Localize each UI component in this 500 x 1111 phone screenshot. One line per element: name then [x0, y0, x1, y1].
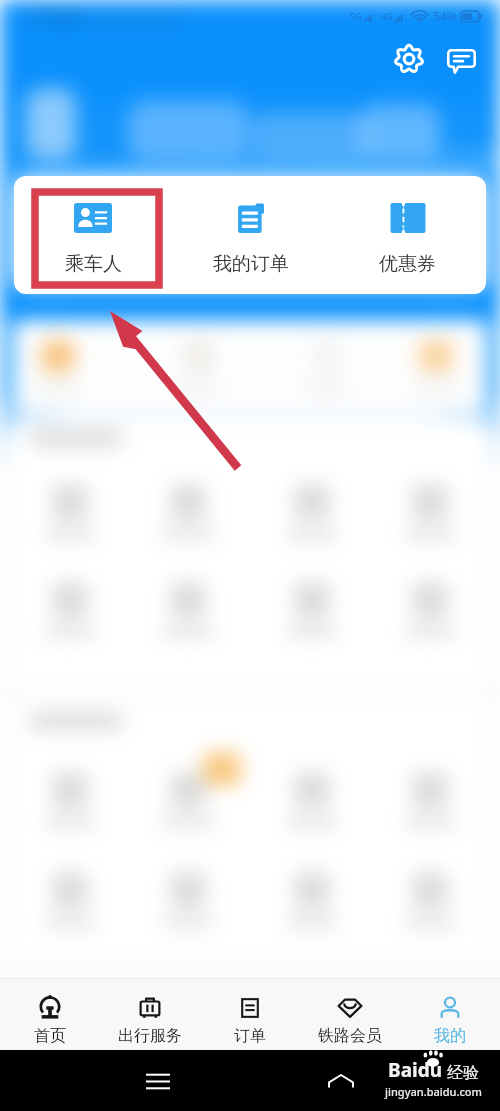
button[interactable]: 首页 [0, 983, 100, 1046]
button[interactable]: 我的 [400, 983, 500, 1046]
button[interactable]: 订单 [200, 983, 300, 1046]
staticText: Baidu [388, 1057, 443, 1083]
button[interactable]: 优惠券 [329, 176, 486, 294]
staticText: 54% [433, 8, 457, 24]
staticText: 铁路会员 [318, 1026, 382, 1046]
button[interactable]: 铁路会员 [300, 983, 400, 1046]
staticText: 乘车人 [65, 252, 122, 276]
staticText: 4G [381, 10, 393, 22]
button[interactable]: Settings [386, 36, 432, 82]
staticText: 首页 [34, 1026, 66, 1046]
staticText: 经验 [447, 1063, 479, 1083]
staticText: 我的 [434, 1026, 466, 1046]
button[interactable]: 我的订单 [172, 176, 329, 294]
button[interactable]: 出行服务 [100, 983, 200, 1046]
staticText: 订单 [234, 1026, 266, 1046]
staticText: jingyan.baidu.com [385, 1084, 482, 1099]
button[interactable]: 乘车人 [14, 176, 172, 294]
button[interactable]: Home [317, 1057, 365, 1105]
staticText: 5G [350, 10, 362, 22]
staticText: 优惠券 [379, 252, 436, 276]
staticText: 我的订单 [213, 252, 289, 276]
button[interactable]: Messages [438, 36, 484, 82]
staticText: 出行服务 [118, 1026, 182, 1046]
button[interactable]: Recents [134, 1057, 182, 1105]
